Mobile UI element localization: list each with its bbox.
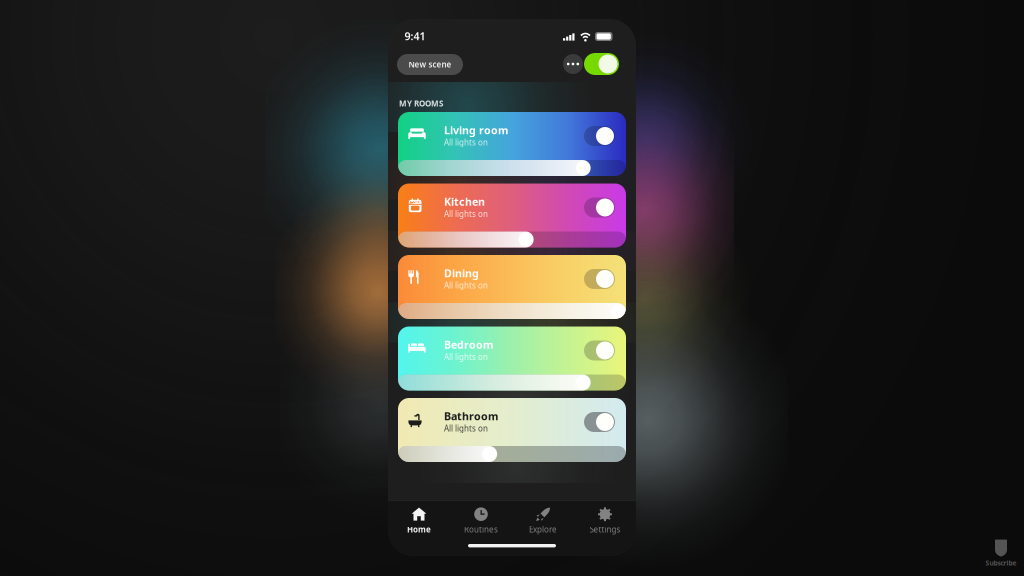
button[interactable]: Routines bbox=[450, 506, 512, 536]
staticText: MY ROOMS bbox=[399, 98, 443, 109]
button[interactable]: Explore bbox=[512, 506, 574, 536]
button[interactable]: All lights on bbox=[584, 53, 619, 75]
button[interactable]: Dining bbox=[398, 255, 626, 319]
staticText: New scene bbox=[408, 59, 451, 70]
staticText: All lights on bbox=[444, 208, 488, 219]
staticText: All lights on bbox=[444, 351, 488, 362]
staticText: Subscribe bbox=[985, 559, 1016, 567]
staticText: Explore bbox=[529, 524, 557, 535]
button[interactable]: Settings bbox=[574, 506, 636, 536]
staticText: Dining bbox=[444, 266, 479, 280]
staticText: All lights on bbox=[444, 137, 488, 148]
staticText: Bathroom bbox=[444, 409, 498, 423]
staticText: 9:41 bbox=[404, 29, 425, 43]
staticText: All lights on bbox=[444, 423, 488, 434]
button[interactable]: Bathroom bbox=[398, 398, 626, 462]
button[interactable]: More options bbox=[563, 54, 583, 74]
button[interactable]: Kitchen bbox=[398, 183, 626, 247]
staticText: Settings bbox=[589, 524, 620, 535]
button[interactable]: New scene bbox=[397, 54, 463, 75]
staticText: Living room bbox=[444, 123, 508, 137]
staticText: Bedroom bbox=[444, 337, 493, 352]
staticText: Home bbox=[407, 524, 431, 535]
staticText: Routines bbox=[464, 524, 498, 535]
staticText: Kitchen bbox=[444, 194, 485, 209]
staticText: All lights on bbox=[444, 280, 488, 291]
button[interactable]: Living room bbox=[398, 112, 626, 176]
button[interactable]: Home bbox=[388, 506, 450, 536]
button[interactable]: Bedroom bbox=[398, 326, 626, 390]
